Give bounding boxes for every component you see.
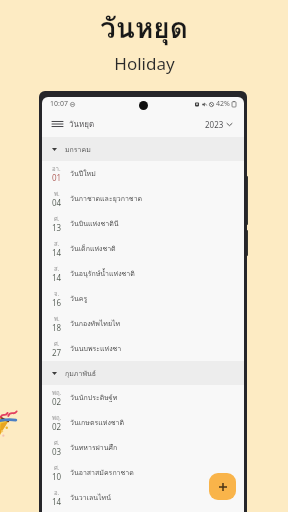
- button[interactable]: พ.: [42, 186, 244, 211]
- staticText: 27: [52, 347, 62, 358]
- staticText: พฤ.: [52, 413, 62, 423]
- staticText: พ.: [54, 189, 60, 199]
- staticText: 01: [52, 172, 62, 183]
- staticText: 02: [52, 396, 62, 407]
- button[interactable]: พฤ.: [42, 410, 244, 435]
- staticText: อ.: [54, 488, 60, 498]
- staticText: ศ.: [54, 463, 60, 473]
- staticText: 14: [52, 247, 62, 258]
- staticText: วันเกษตรแห่งชาติ: [70, 417, 125, 428]
- staticText: 14: [52, 272, 62, 283]
- staticText: มกราคม: [65, 144, 91, 155]
- staticText: ศ.: [54, 339, 60, 349]
- staticText: วันหยุด: [69, 118, 95, 131]
- staticText: วันวาเลนไทน์: [70, 492, 111, 503]
- button[interactable]: อา.: [42, 161, 244, 186]
- staticText: กุมภาพันธ์: [65, 368, 97, 379]
- staticText: วันนักประดิษฐ์ท: [70, 392, 118, 403]
- button[interactable]: พ.: [42, 311, 244, 336]
- staticText: วันอนุรักษ์น้ำแห่งชาติ: [70, 268, 135, 279]
- button[interactable]: มกราคม: [42, 137, 244, 161]
- staticText: 03: [52, 446, 62, 457]
- button[interactable]: จ.: [42, 286, 244, 311]
- button[interactable]: ศ.: [42, 435, 244, 460]
- staticText: 13: [52, 222, 62, 233]
- staticText: อา.: [52, 164, 61, 174]
- staticText: ส.: [54, 264, 60, 274]
- staticText: วันครู: [70, 293, 88, 304]
- staticText: พฤ.: [52, 388, 62, 398]
- staticText: วันบินแห่งชาตินี: [70, 218, 119, 229]
- button[interactable]: ศ.: [42, 211, 244, 236]
- button[interactable]: ส.: [42, 236, 244, 261]
- staticText: วันอาสาสมัครกาชาด: [70, 467, 134, 478]
- button[interactable]: อ.: [42, 485, 244, 510]
- staticText: ศ.: [54, 214, 60, 224]
- staticText: พ.: [54, 314, 60, 324]
- button[interactable]: Add: [209, 473, 236, 500]
- button[interactable]: ศ.: [42, 460, 244, 485]
- staticText: 18: [52, 322, 62, 333]
- button[interactable]: ศ.: [42, 336, 244, 361]
- button[interactable]: พฤ.: [42, 385, 244, 410]
- staticText: วันเด็กแห่งชาติ: [70, 243, 116, 254]
- staticText: 02: [52, 421, 62, 432]
- button[interactable]: ส.: [42, 261, 244, 286]
- staticText: 16: [52, 297, 62, 308]
- button[interactable]: 2023: [204, 117, 233, 132]
- staticText: 2023: [205, 119, 224, 130]
- button[interactable]: กุมภาพันธ์: [42, 361, 244, 385]
- staticText: วันนบพระแห่งชา: [70, 343, 122, 354]
- staticText: Holiday: [114, 52, 175, 75]
- staticText: ส.: [54, 239, 60, 249]
- staticText: วันทหารผ่านศึก: [70, 442, 118, 453]
- staticText: 14: [52, 496, 62, 507]
- staticText: 10:07: [50, 99, 68, 109]
- staticText: 42%: [216, 99, 230, 109]
- staticText: 10: [52, 471, 62, 482]
- staticText: วันหยุด: [100, 6, 188, 51]
- staticText: วันกองทัพไทยไท: [70, 318, 121, 329]
- staticText: วันปีใหม่: [70, 168, 96, 179]
- staticText: วันกาชาดและยุวกาชาด: [70, 193, 143, 204]
- staticText: ศ.: [54, 438, 60, 448]
- staticText: จ.: [54, 289, 60, 299]
- button[interactable]: Menu: [51, 116, 64, 132]
- staticText: 04: [52, 197, 62, 208]
